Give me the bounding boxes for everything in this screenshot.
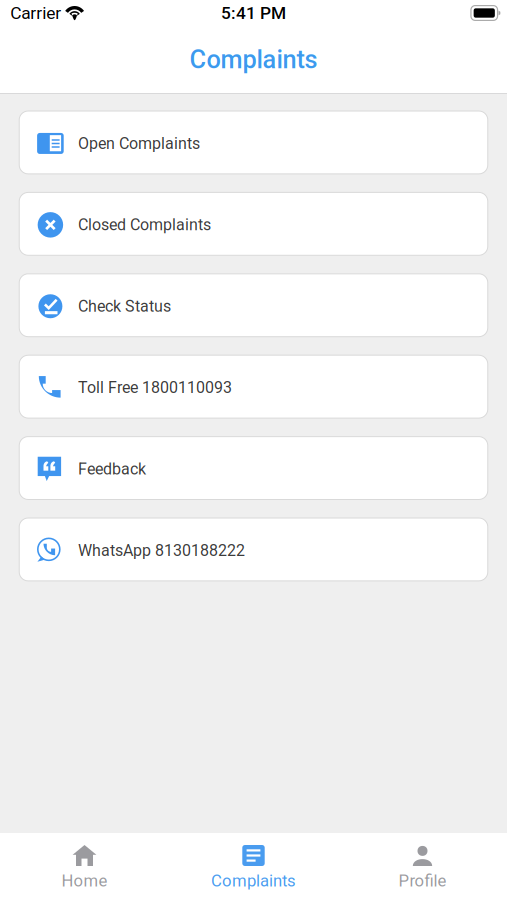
staticText: Carrier (10, 3, 61, 23)
staticText: WhatsApp 8130188222 (78, 541, 245, 560)
staticText: Complaints (189, 45, 317, 75)
staticText: Toll Free 1800110093 (78, 378, 232, 397)
button[interactable]: Toll Free 1800110093 (19, 355, 488, 418)
button[interactable]: Complaints (169, 832, 338, 900)
button[interactable]: WhatsApp 8130188222 (19, 518, 488, 581)
button[interactable]: Feedback (19, 437, 488, 499)
staticText: Feedback (78, 460, 146, 478)
staticText: Closed Complaints (78, 215, 211, 234)
button[interactable]: Closed Complaints (19, 192, 488, 255)
button[interactable]: Open Complaints (19, 111, 488, 174)
staticText: Check Status (78, 297, 171, 316)
staticText: Home (61, 871, 107, 890)
button[interactable]: Check Status (19, 274, 488, 337)
staticText: Open Complaints (78, 134, 200, 153)
button[interactable]: Profile (338, 832, 507, 900)
staticText: 5:41 PM (221, 3, 286, 23)
staticText: Complaints (211, 871, 296, 890)
button[interactable]: Home (0, 832, 169, 900)
staticText: Profile (398, 871, 446, 890)
